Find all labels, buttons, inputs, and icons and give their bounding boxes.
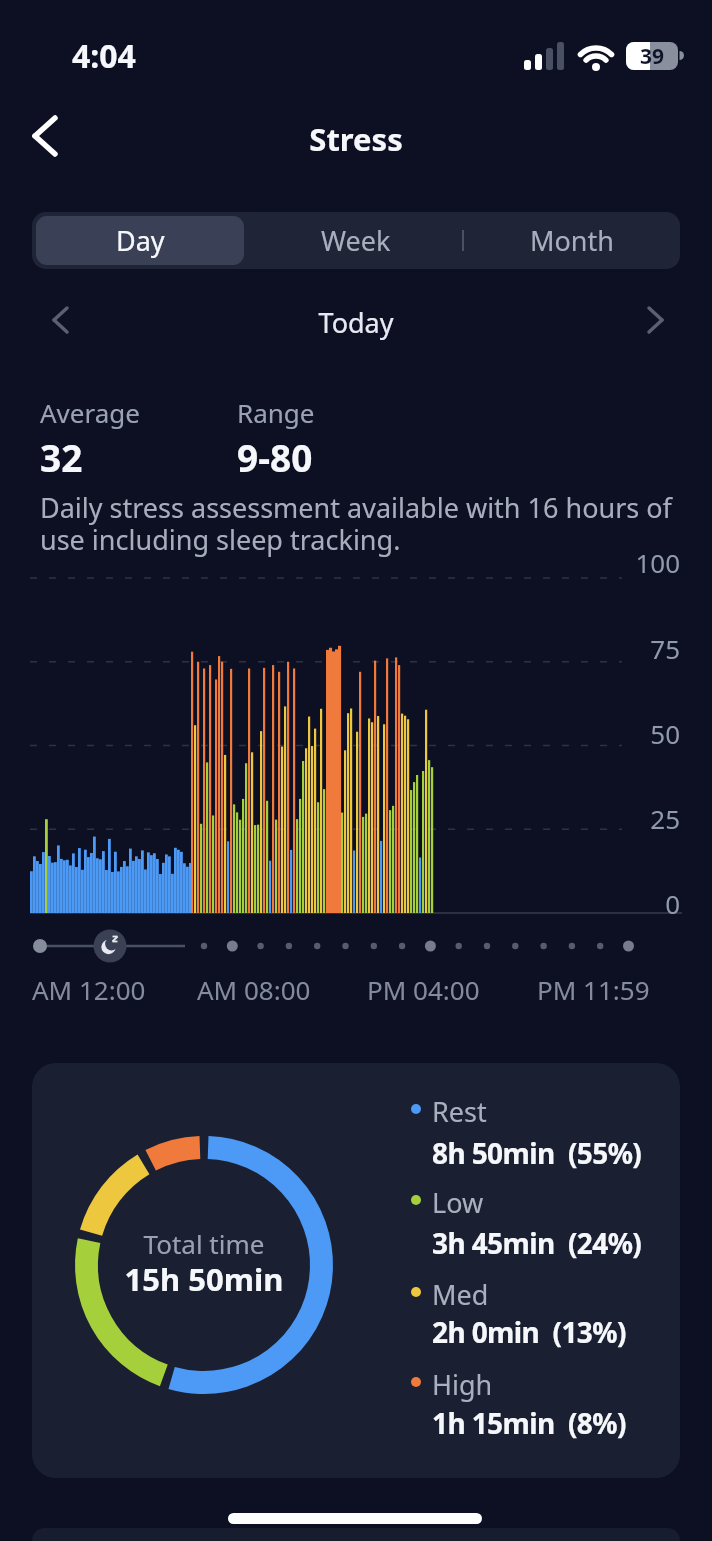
- staticText: Month: [530, 222, 614, 259]
- staticText: 8h 50min (55%): [432, 1134, 642, 1172]
- staticText: 50: [600, 716, 680, 751]
- button[interactable]: Day: [32, 212, 248, 269]
- staticText: Range: [237, 395, 315, 430]
- staticText: Daily stress assessment available with 1…: [40, 489, 672, 558]
- staticText: 25: [600, 801, 680, 836]
- staticText: AM 12:00: [32, 972, 146, 1007]
- staticText: 39: [640, 42, 665, 70]
- staticText: High: [432, 1366, 493, 1403]
- staticText: Day: [116, 222, 165, 259]
- staticText: 9-80: [237, 432, 313, 482]
- staticText: Low: [432, 1184, 484, 1221]
- staticText: 3h 45min (24%): [432, 1224, 642, 1262]
- button[interactable]: [32, 1063, 680, 1478]
- button[interactable]: [40, 296, 80, 344]
- staticText: PM 04:00: [367, 972, 480, 1007]
- button[interactable]: [36, 216, 244, 265]
- staticText: Average: [40, 395, 140, 430]
- staticText: 2h 0min (13%): [432, 1313, 626, 1351]
- staticText: Total time: [104, 1226, 304, 1261]
- staticText: 1h 15min (8%): [432, 1404, 626, 1442]
- staticText: 0: [600, 886, 680, 921]
- staticText: 15h 50min: [84, 1258, 324, 1300]
- staticText: Today: [0, 304, 712, 341]
- staticText: 32: [40, 432, 83, 482]
- staticText: 75: [600, 631, 680, 666]
- staticText: Week: [321, 222, 391, 259]
- button[interactable]: [20, 108, 68, 164]
- button[interactable]: Week: [248, 212, 464, 269]
- button[interactable]: [636, 296, 676, 344]
- staticText: Rest: [432, 1093, 487, 1130]
- staticText: PM 11:59: [537, 972, 650, 1007]
- button[interactable]: Month: [464, 212, 680, 269]
- staticText: Med: [432, 1276, 489, 1313]
- staticText: AM 08:00: [197, 972, 311, 1007]
- staticText: 100: [600, 545, 680, 580]
- staticText: Stress: [0, 118, 712, 160]
- staticText: 4:04: [72, 34, 136, 78]
